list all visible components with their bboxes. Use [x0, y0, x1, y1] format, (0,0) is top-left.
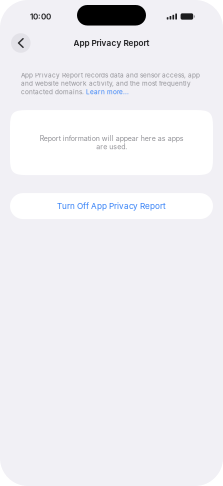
button[interactable]: Turn Off App Privacy Report — [10, 193, 213, 219]
staticText: App Privacy Report — [73, 38, 149, 48]
staticText: App Privacy Report records data and sens… — [21, 71, 200, 96]
staticText: 10:00 — [30, 12, 51, 21]
button[interactable]: Back — [9, 31, 33, 55]
staticText: Turn Off App Privacy Report — [57, 201, 166, 211]
staticText: Report information will appear here as a… — [39, 134, 183, 151]
